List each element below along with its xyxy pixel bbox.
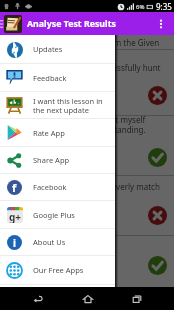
staticText: Analyse Test Results — [27, 18, 116, 30]
staticText: Facebook — [33, 182, 67, 192]
staticText: Google Plus — [33, 210, 75, 220]
staticText: 2) The cat was prowling successfully hun… — [6, 62, 164, 83]
button[interactable]: Open navigation drawer — [4, 15, 22, 33]
staticText: About Us — [33, 237, 66, 247]
staticText: Our Free Apps — [33, 265, 84, 275]
staticText: 9:35 — [156, 1, 172, 12]
button[interactable]: Back — [26, 287, 49, 310]
button[interactable]: i — [0, 229, 115, 255]
button[interactable]: I want this lesson in the next update — [0, 92, 115, 118]
button[interactable]: Our Free Apps — [0, 256, 115, 284]
staticText: i — [13, 236, 16, 250]
staticText: g+ — [9, 210, 22, 223]
staticText: 6% — [136, 3, 145, 11]
button[interactable]: Rate App — [0, 119, 115, 146]
staticText: Feedback — [33, 73, 67, 83]
staticText: 4) His jacket and his tie do cleverly ma… — [6, 181, 164, 202]
button[interactable]: Recent apps — [125, 287, 148, 310]
staticText: Share App — [33, 155, 70, 165]
button[interactable]: Home — [76, 287, 99, 310]
staticText: Rate App — [33, 128, 65, 138]
staticText: 1) Choose correct answer from the Given … — [6, 37, 164, 58]
staticText: 3) I have been able to support myself fr… — [6, 114, 164, 135]
button[interactable]: Updates — [0, 35, 115, 63]
button[interactable]: f — [0, 174, 115, 200]
button[interactable]: Share App — [0, 147, 115, 173]
staticText: I want this lesson in the next update — [33, 96, 115, 115]
staticText: f — [12, 180, 17, 195]
button[interactable]: Feedback — [0, 64, 115, 91]
button[interactable]: g+ — [0, 201, 115, 228]
staticText: 5) She has a lovely voice. — [6, 246, 98, 257]
button[interactable]: More options — [151, 14, 171, 34]
staticText: Updates — [33, 44, 63, 54]
